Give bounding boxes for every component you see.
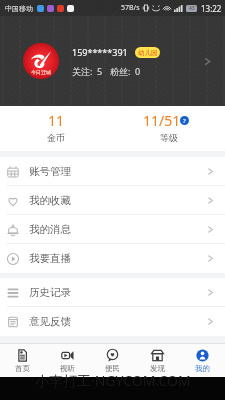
staticText: 43 [189, 5, 195, 12]
staticText: 粉丝: 0 [110, 65, 141, 77]
staticText: 13:22 [201, 3, 222, 14]
staticText: 小李打工·NGYCOM.COM [35, 371, 191, 390]
button[interactable]: 我的收藏 [0, 186, 225, 215]
staticText: 我的收藏 [29, 194, 71, 207]
button[interactable]: 发现 [135, 344, 180, 377]
staticText: 视听 [60, 364, 75, 373]
staticText: 中国移动 [5, 4, 33, 13]
button[interactable]: 我的消息 [0, 215, 225, 244]
button[interactable]: 历史记录 [0, 278, 225, 307]
button[interactable]: 账号管理 [0, 157, 225, 186]
staticText: 账号管理 [29, 165, 71, 178]
button[interactable]: 今日迁城 [23, 16, 213, 106]
button[interactable]: 11 [0, 106, 112, 147]
staticText: 我的消息 [29, 223, 71, 236]
staticText: 便民 [105, 364, 120, 373]
staticText: 等级 [160, 132, 178, 143]
staticText: 11 [48, 111, 65, 130]
button[interactable]: 我的 [180, 344, 225, 377]
button[interactable]: 11/51 [112, 106, 225, 147]
staticText: 关注: 5 [72, 65, 103, 77]
button[interactable]: 便民 [90, 344, 135, 377]
button[interactable]: 意见反馈 [0, 307, 225, 336]
staticText: 幼儿园 [138, 49, 158, 57]
staticText: 金币 [47, 132, 65, 143]
staticText: 159*****391 [72, 46, 128, 58]
staticText: 我要直播 [29, 252, 71, 265]
staticText: 57B/s [121, 3, 140, 13]
staticText: 我的 [195, 364, 210, 373]
staticText: 首页 [15, 364, 30, 373]
staticText: 意见反馈 [29, 315, 71, 328]
staticText: ? [183, 117, 186, 125]
staticText: 历史记录 [29, 286, 71, 299]
button[interactable]: 首页 [0, 344, 45, 377]
staticText: 今日迁城 [31, 69, 51, 75]
staticText: 发现 [150, 364, 165, 373]
button[interactable]: 视听 [45, 344, 90, 377]
staticText: 11/51 [143, 111, 181, 130]
button[interactable]: 我要直播 [0, 244, 225, 273]
